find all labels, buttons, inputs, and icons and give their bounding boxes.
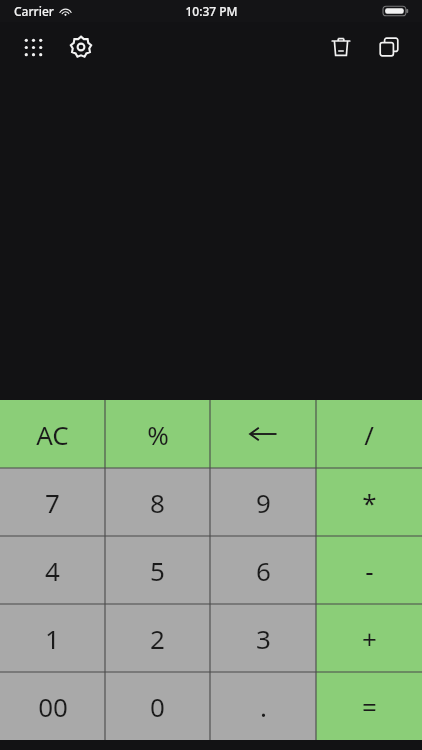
staticText: 9	[256, 485, 271, 520]
button[interactable]: 5	[105, 536, 210, 604]
staticText: =	[362, 689, 377, 724]
button[interactable]: 6	[210, 536, 316, 604]
button[interactable]: +	[316, 604, 422, 672]
button[interactable]: *	[316, 468, 422, 536]
staticText: .	[260, 689, 267, 724]
staticText: 7	[45, 485, 60, 520]
button[interactable]: 1	[0, 604, 105, 672]
staticText: /	[364, 417, 374, 452]
staticText: 10:37 PM	[185, 3, 238, 19]
staticText: 6	[256, 553, 271, 588]
button[interactable]: 00	[0, 672, 105, 740]
staticText: 0	[150, 689, 165, 724]
button[interactable]: AC	[0, 400, 105, 468]
button[interactable]: .	[210, 672, 316, 740]
staticText: AC	[36, 417, 69, 452]
button[interactable]: 4	[0, 536, 105, 604]
button[interactable]: 9	[210, 468, 316, 536]
button[interactable]: Apps	[12, 26, 54, 68]
button[interactable]: 2	[105, 604, 210, 672]
staticText: %	[147, 417, 169, 452]
button[interactable]: 3	[210, 604, 316, 672]
button[interactable]: %	[105, 400, 210, 468]
staticText: 2	[150, 621, 165, 656]
button[interactable]: =	[316, 672, 422, 740]
staticText: 5	[150, 553, 165, 588]
staticText: 4	[45, 553, 60, 588]
staticText: -	[365, 553, 374, 588]
button[interactable]: -	[316, 536, 422, 604]
staticText: 00	[38, 689, 68, 724]
button[interactable]: 8	[105, 468, 210, 536]
staticText: *	[362, 485, 377, 520]
button[interactable]: Copy	[368, 26, 410, 68]
staticText: +	[362, 621, 377, 656]
button[interactable]: /	[316, 400, 422, 468]
button[interactable]: Settings	[60, 26, 102, 68]
button[interactable]: Delete history	[320, 26, 362, 68]
staticText: Carrier	[14, 3, 54, 19]
button[interactable]: 0	[105, 672, 210, 740]
staticText: 3	[256, 621, 271, 656]
button[interactable]	[210, 400, 316, 468]
staticText: 1	[45, 621, 60, 656]
button[interactable]: 7	[0, 468, 105, 536]
staticText: 8	[150, 485, 165, 520]
